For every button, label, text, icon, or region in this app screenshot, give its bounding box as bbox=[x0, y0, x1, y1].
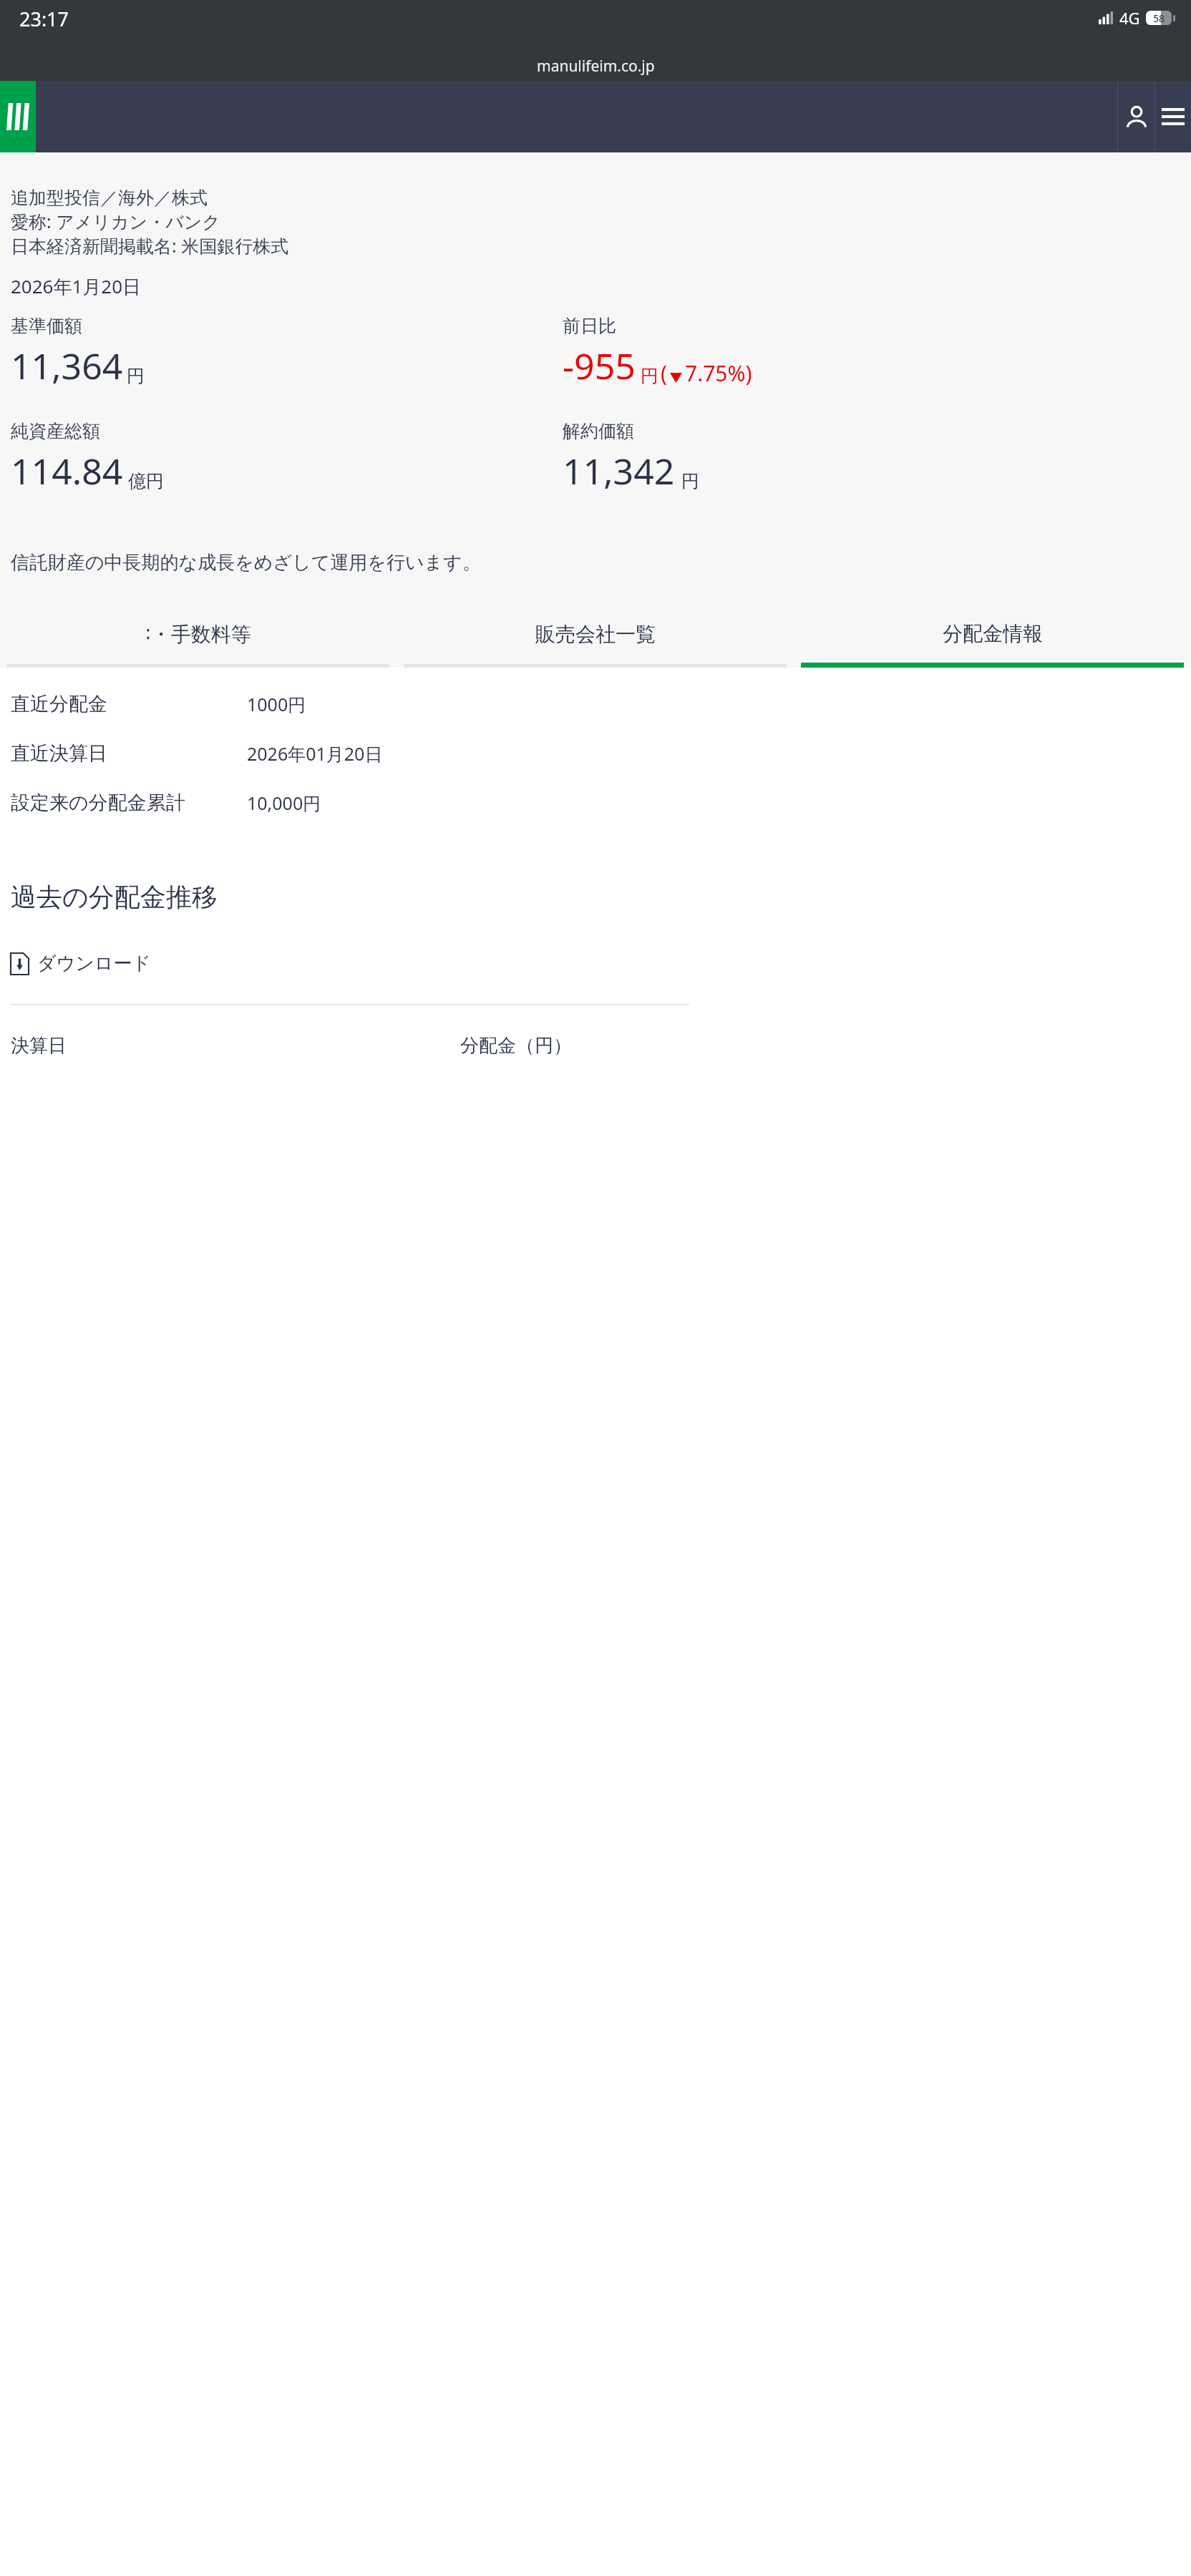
staticText: ダウンロード bbox=[37, 952, 152, 975]
staticText: 10,000円 bbox=[247, 791, 321, 815]
staticText: 億円 bbox=[128, 470, 164, 492]
staticText: 分配金（円） bbox=[460, 1034, 1180, 1058]
staticText: 過去の分配金推移 bbox=[11, 881, 218, 913]
button[interactable]: 設定来の分配金累計 bbox=[11, 791, 1180, 815]
staticText: 11,364 bbox=[11, 341, 123, 390]
staticText: 円 bbox=[681, 470, 699, 492]
button[interactable]: ダウンロード bbox=[11, 952, 152, 975]
button[interactable]: Menu bbox=[1155, 81, 1191, 152]
staticText: 58 bbox=[1153, 11, 1165, 25]
staticText: 直近決算日 bbox=[11, 741, 247, 766]
staticText: 円 bbox=[641, 365, 658, 387]
button[interactable]: 分配金情報 bbox=[794, 605, 1191, 668]
button[interactable]: 販売会社一覧 bbox=[397, 605, 794, 668]
button[interactable]: Manulife home bbox=[0, 81, 36, 152]
staticText: ∶・手数料等 bbox=[145, 622, 251, 647]
staticText: ( bbox=[661, 358, 667, 388]
button[interactable]: 直近決算日 bbox=[11, 741, 1180, 766]
button[interactable]: ∶・手数料等 bbox=[0, 605, 397, 668]
staticText: 直近分配金 bbox=[11, 692, 247, 716]
staticText: 純資産総額 bbox=[11, 420, 100, 442]
staticText: 愛称: アメリカン・バンク bbox=[11, 209, 220, 233]
staticText: 114.84 bbox=[11, 447, 123, 495]
staticText: 11,342 bbox=[563, 447, 675, 495]
staticText: 2026年1月20日 bbox=[11, 273, 142, 299]
staticText: 信託財産の中長期的な成長をめざして運用を行います。 bbox=[11, 551, 481, 575]
staticText: 分配金情報 bbox=[943, 621, 1043, 646]
staticText: 23:17 bbox=[19, 6, 69, 32]
staticText: 4G bbox=[1119, 7, 1140, 29]
staticText: 円 bbox=[127, 365, 145, 387]
button[interactable]: Account bbox=[1118, 81, 1154, 152]
staticText: 日本経済新聞掲載名: 米国銀行株式 bbox=[11, 233, 289, 258]
staticText: 解約価額 bbox=[563, 420, 634, 442]
staticText: 販売会社一覧 bbox=[535, 622, 656, 647]
staticText: -955 bbox=[563, 341, 636, 390]
staticText: 基準価額 bbox=[11, 315, 82, 337]
staticText: manulifeim.co.jp bbox=[537, 56, 655, 77]
button[interactable]: 直近分配金 bbox=[11, 692, 1180, 716]
staticText: 前日比 bbox=[563, 315, 616, 337]
staticText: 設定来の分配金累計 bbox=[11, 791, 247, 815]
staticText: 決算日 bbox=[11, 1034, 460, 1058]
staticText: 2026年01月20日 bbox=[247, 741, 383, 766]
staticText: 7.75%) bbox=[685, 358, 752, 388]
staticText: 追加型投信／海外／株式 bbox=[11, 187, 208, 209]
staticText: 1000円 bbox=[247, 692, 306, 716]
